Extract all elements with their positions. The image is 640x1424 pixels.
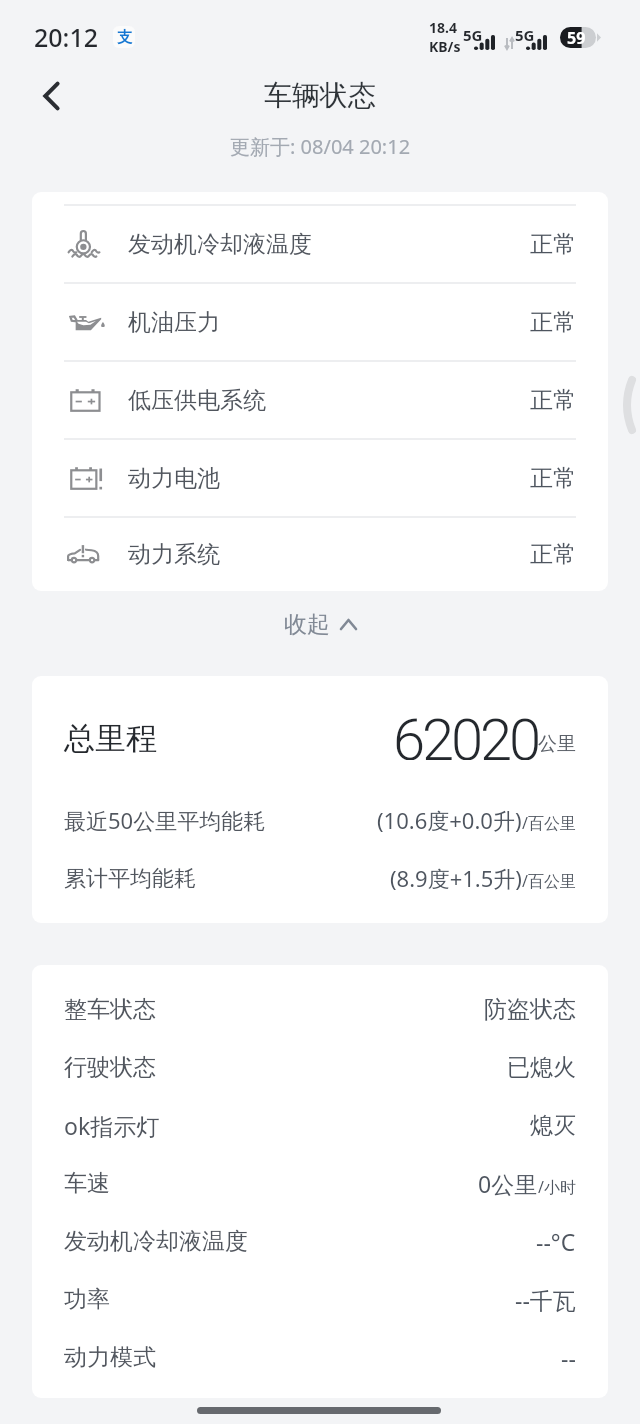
staticText: 支: [117, 28, 132, 47]
staticText: 更新于: 08/04 20:12: [230, 133, 411, 160]
staticText: 59: [567, 27, 586, 48]
staticText: 车辆状态: [264, 78, 376, 113]
staticText: 20:12: [34, 20, 99, 54]
staticText: 正常: [530, 308, 576, 337]
staticText: (8.9度+1.5升): [390, 863, 522, 893]
button[interactable]: 收起: [260, 596, 380, 653]
staticText: /百公里: [522, 812, 576, 834]
staticText: 收起: [284, 610, 330, 639]
staticText: 动力电池: [128, 464, 220, 493]
staticText: 整车状态: [64, 995, 156, 1024]
staticText: 动力系统: [128, 540, 220, 569]
staticText: 低压供电系统: [128, 386, 266, 415]
staticText: (10.6度+0.0升): [377, 805, 522, 835]
staticText: 发动机冷却液温度: [64, 1227, 248, 1256]
staticText: 熄灭: [530, 1111, 576, 1140]
button[interactable]: 低压供电系统: [32, 362, 608, 438]
staticText: 62020: [393, 706, 538, 760]
staticText: /小时: [538, 1176, 576, 1198]
button[interactable]: 动力系统: [32, 518, 608, 591]
staticText: 正常: [530, 230, 576, 259]
staticText: --°C: [536, 1226, 576, 1257]
staticText: 行驶状态: [64, 1053, 156, 1082]
staticText: 机油压力: [128, 308, 220, 337]
staticText: 0公里: [478, 1168, 538, 1199]
staticText: 动力模式: [64, 1343, 156, 1372]
staticText: 发动机冷却液温度: [128, 230, 312, 259]
staticText: --: [561, 1342, 576, 1373]
staticText: 已熄火: [507, 1053, 576, 1082]
button[interactable]: 发动机冷却液温度: [32, 206, 608, 282]
staticText: KB/s: [429, 37, 461, 56]
staticText: ok指示灯: [64, 1110, 160, 1141]
staticText: 公里: [538, 732, 576, 756]
staticText: --千瓦: [515, 1284, 576, 1315]
button[interactable]: 机油压力: [32, 284, 608, 360]
staticText: 防盗状态: [484, 995, 576, 1024]
staticText: 18.4: [429, 18, 457, 37]
staticText: /百公里: [522, 870, 576, 892]
staticText: 正常: [530, 540, 576, 569]
staticText: 总里程: [64, 719, 157, 758]
staticText: 5G: [463, 25, 483, 45]
staticText: 最近50公里平均能耗: [64, 805, 266, 835]
staticText: 功率: [64, 1285, 110, 1314]
button[interactable]: Back: [21, 65, 83, 127]
staticText: 正常: [530, 464, 576, 493]
staticText: 正常: [530, 386, 576, 415]
staticText: 累计平均能耗: [64, 865, 196, 893]
button[interactable]: 动力电池: [32, 440, 608, 516]
staticText: 车速: [64, 1169, 110, 1198]
staticText: 5G: [515, 25, 535, 45]
